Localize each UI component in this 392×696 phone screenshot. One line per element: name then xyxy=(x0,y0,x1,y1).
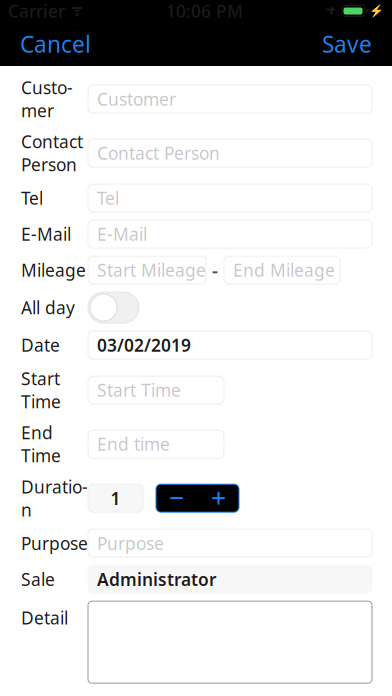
staticText: Start Time xyxy=(21,367,61,413)
button[interactable]: Purpose xyxy=(88,529,372,557)
staticText: Tel xyxy=(97,187,119,210)
button[interactable]: Detail xyxy=(88,601,372,683)
button[interactable]: 03/02/2019 xyxy=(88,331,372,359)
staticText: Mileage xyxy=(21,259,86,282)
button[interactable]: Customer xyxy=(88,85,372,113)
staticText: Contact Person xyxy=(97,141,220,164)
staticText: Carrier xyxy=(8,0,65,22)
staticText: Customer xyxy=(21,76,73,122)
staticText: Cancel xyxy=(20,29,91,59)
staticText: Person xyxy=(21,153,77,176)
staticText: Start Mileage xyxy=(97,259,206,282)
button[interactable]: Decrease duration xyxy=(156,484,197,512)
staticText: 03/02/2019 xyxy=(97,334,191,357)
staticText: ⚡ xyxy=(369,4,384,18)
staticText: Sale xyxy=(21,568,55,591)
staticText: Duration xyxy=(21,475,88,521)
staticText: 1 xyxy=(110,487,120,510)
button[interactable]: Tel xyxy=(88,184,372,212)
staticText: Purpose xyxy=(97,532,164,555)
button[interactable]: All day xyxy=(88,292,139,323)
button[interactable]: Increase duration xyxy=(198,484,239,512)
staticText: Save xyxy=(322,29,372,59)
staticText: End Mileage xyxy=(233,259,335,282)
button[interactable]: E-Mail xyxy=(88,220,372,248)
staticText: Administrator xyxy=(97,568,217,591)
staticText: E-Mail xyxy=(97,223,147,246)
staticText: Start Time xyxy=(97,379,181,402)
staticText: Purpose xyxy=(21,532,88,555)
button[interactable]: End Mileage xyxy=(224,256,340,284)
button[interactable]: Save xyxy=(314,21,380,67)
staticText: All day xyxy=(21,296,75,319)
button[interactable]: Duration value xyxy=(88,484,143,512)
staticText: Contact xyxy=(21,130,83,153)
staticText: 10:06 PM xyxy=(166,0,243,22)
button[interactable]: Administrator xyxy=(88,565,372,593)
staticText: - xyxy=(212,258,218,282)
staticText: End time xyxy=(97,433,170,456)
staticText: Detail xyxy=(21,606,68,629)
staticText: E-Mail xyxy=(21,223,71,246)
staticText: Date xyxy=(21,334,60,357)
button[interactable]: End time xyxy=(88,430,224,458)
button[interactable]: Cancel xyxy=(12,21,99,67)
staticText: Customer xyxy=(97,87,176,110)
staticText: Tel xyxy=(21,187,43,210)
button[interactable]: Start Time xyxy=(88,376,224,404)
button[interactable]: Start Mileage xyxy=(88,256,206,284)
button[interactable]: Contact Person xyxy=(88,139,372,167)
staticText: End Time xyxy=(21,421,61,467)
